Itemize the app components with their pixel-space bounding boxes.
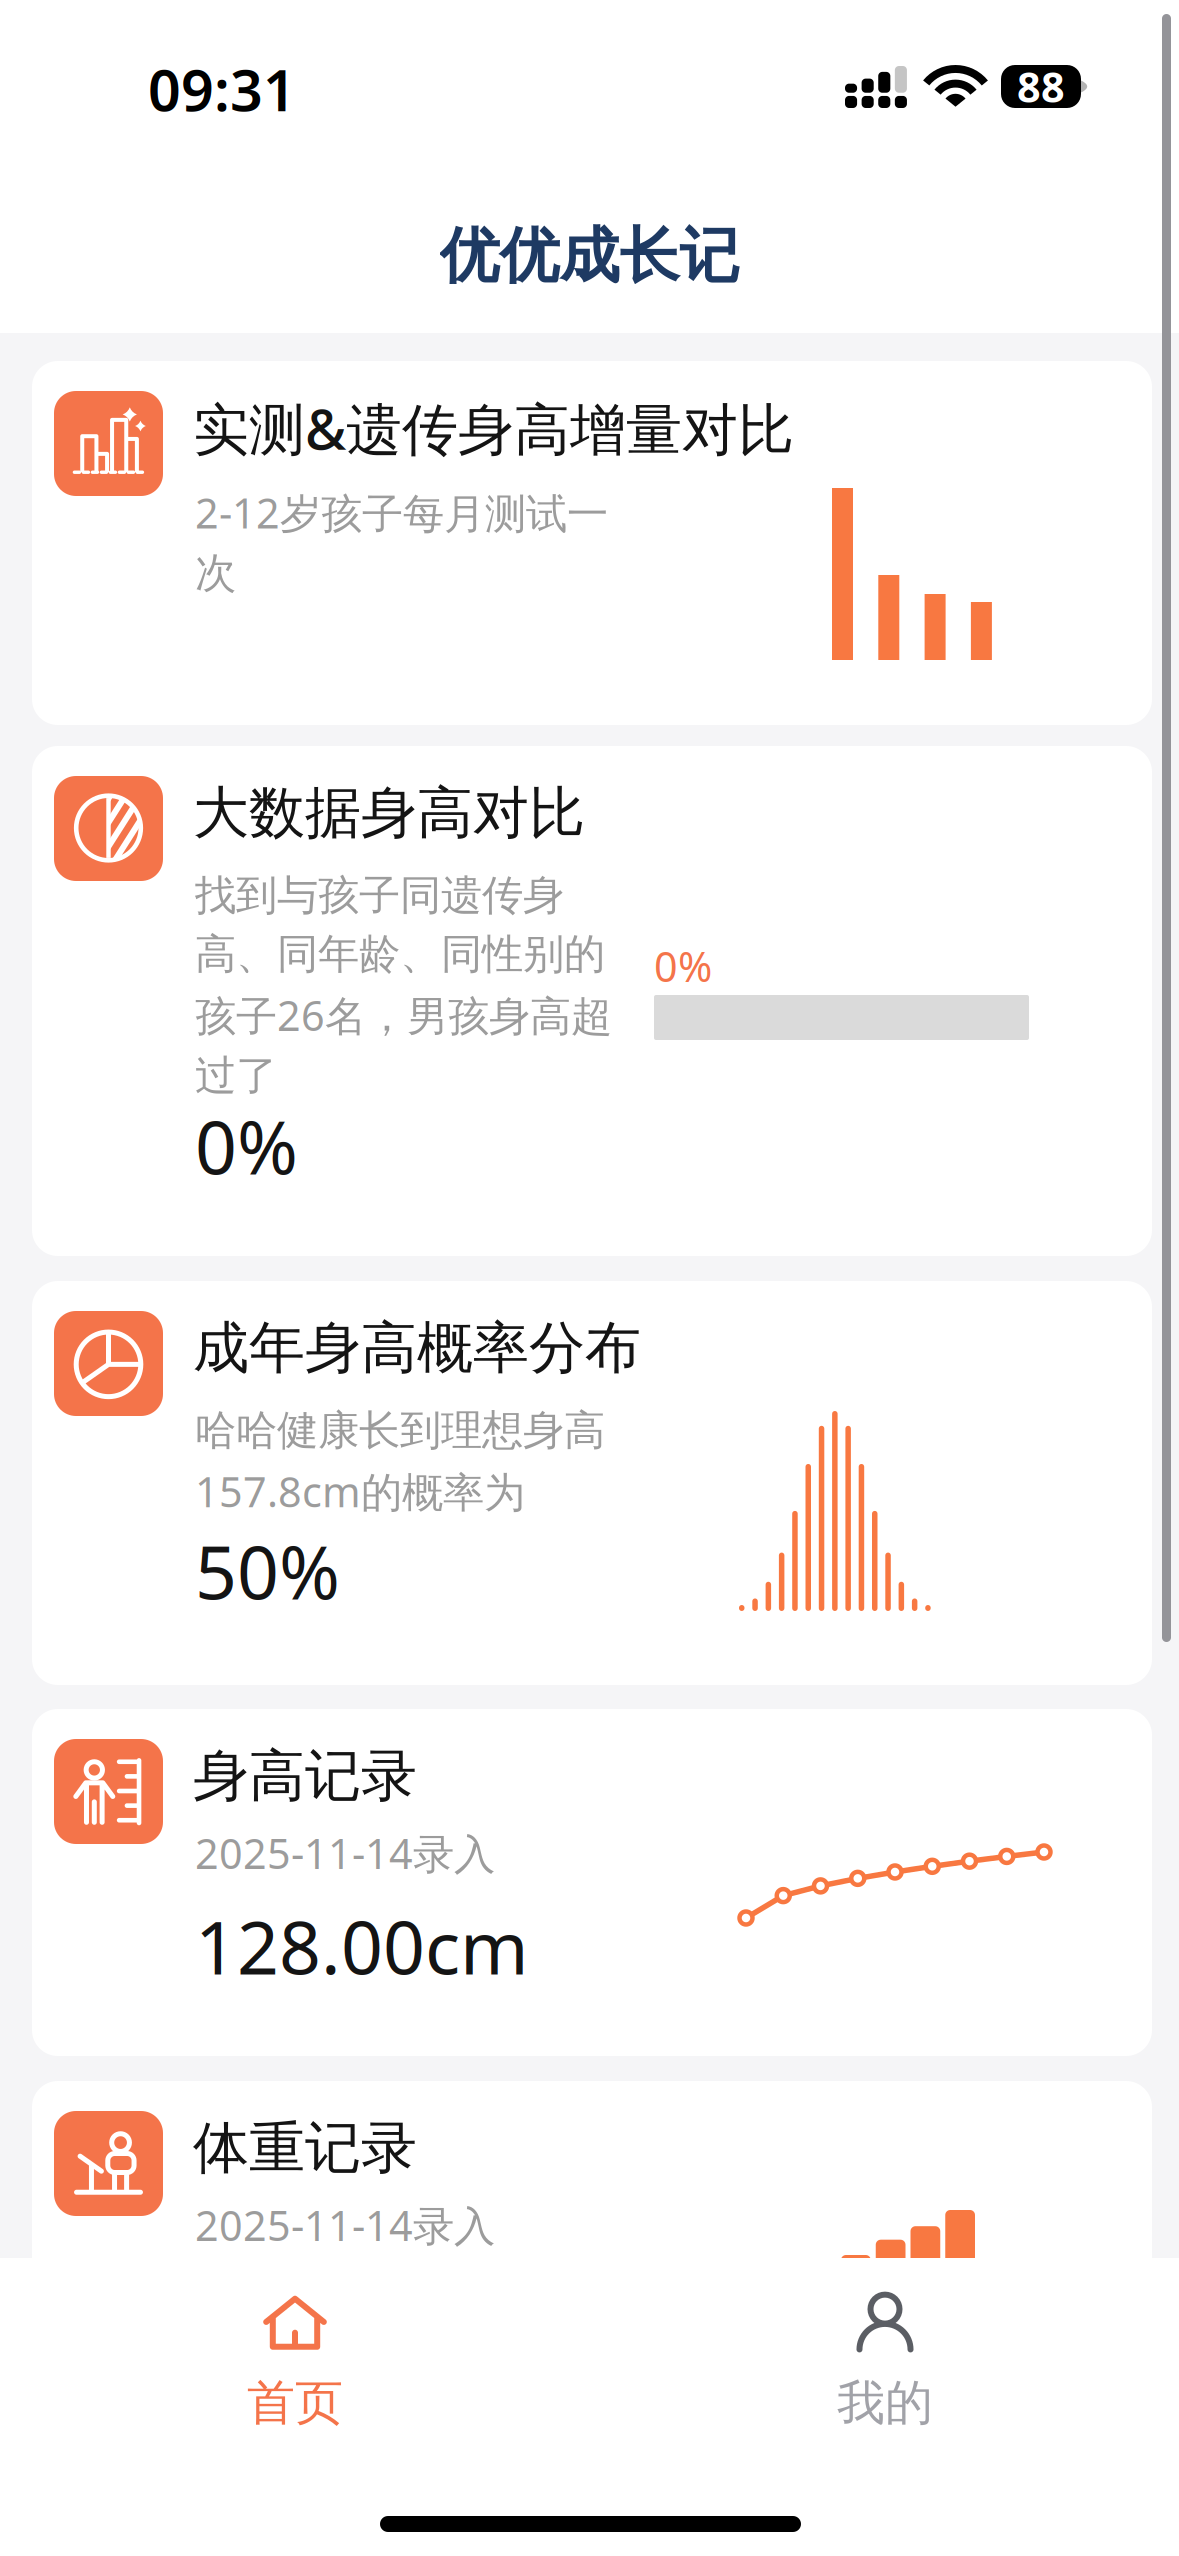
button[interactable]: 实测&遗传身高增量对比	[32, 361, 1152, 725]
button[interactable]: 身高记录	[32, 1709, 1152, 2056]
button[interactable]: 大数据身高对比	[32, 746, 1152, 1256]
staticText: 2-12岁孩子每月测试一次	[195, 485, 608, 599]
staticText: 优优成长记	[439, 219, 739, 293]
button[interactable]: 首页	[0, 2258, 589, 2433]
staticText: 找到与孩子同遗传身高、同年龄、同性别的孩子26名，男孩身高超过了	[195, 870, 612, 1101]
staticText: 2025-11-14录入	[195, 1826, 495, 1880]
staticText: 50%	[195, 1522, 340, 1620]
staticText: 大数据身高对比	[193, 779, 585, 847]
staticText: 128.00cm	[195, 1897, 529, 1995]
staticText: 身高记录	[193, 1742, 417, 1810]
staticText: 体重记录	[193, 2114, 417, 2182]
staticText: 2025-11-14录入	[195, 2198, 495, 2252]
staticText: 我的	[837, 2373, 933, 2432]
staticText: 首页	[247, 2373, 343, 2432]
button[interactable]: 我的	[590, 2258, 1179, 2433]
staticText: 0%	[195, 1097, 298, 1195]
staticText: 成年身高概率分布	[193, 1314, 641, 1382]
staticText: 0%	[654, 939, 712, 993]
staticText: 哈哈健康长到理想身高157.8cm的概率为	[195, 1405, 605, 1519]
button[interactable]: 成年身高概率分布	[32, 1281, 1152, 1685]
button[interactable]: 体重记录	[32, 2081, 1152, 2421]
staticText: 实测&遗传身高增量对比	[193, 391, 794, 465]
staticText: 09:31	[148, 51, 296, 127]
staticText: 88	[1017, 59, 1065, 114]
